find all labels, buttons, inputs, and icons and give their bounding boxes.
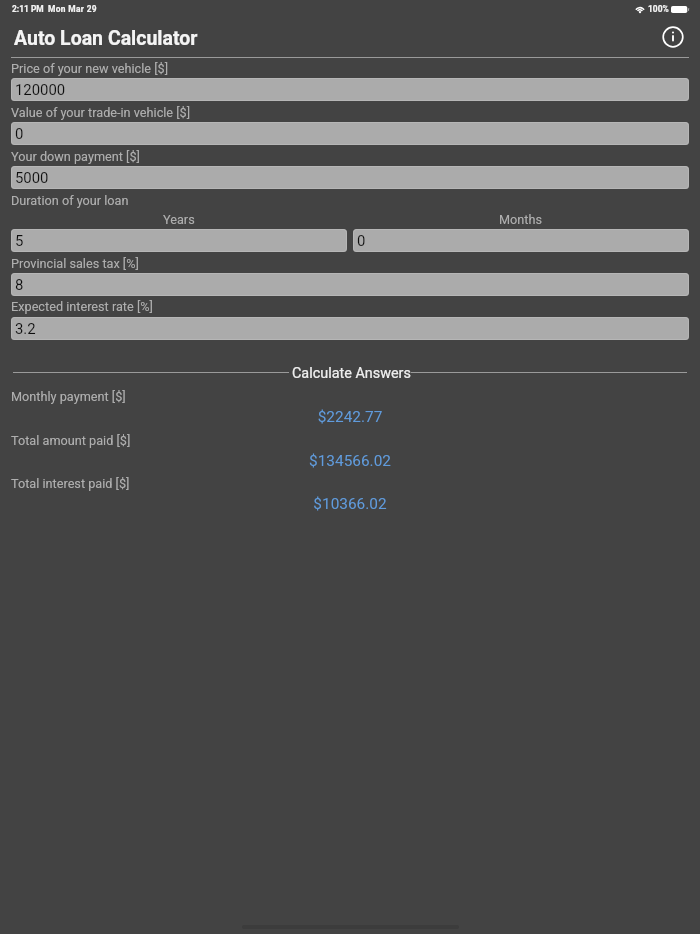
button[interactable]: 5: [11, 229, 347, 252]
button[interactable]: 120000: [11, 78, 689, 101]
staticText: 3.2: [15, 320, 36, 337]
staticText: Expected interest rate [%]: [11, 299, 153, 314]
staticText: 0: [357, 232, 366, 249]
staticText: Duration of your loan: [11, 193, 129, 208]
staticText: Monthly payment [$]: [11, 389, 126, 404]
button[interactable]: 3.2: [11, 317, 689, 340]
staticText: Calculate Answers: [292, 365, 411, 382]
staticText: Years: [163, 212, 195, 227]
staticText: Price of your new vehicle [$]: [11, 61, 169, 76]
button[interactable]: 5000: [11, 166, 689, 189]
button[interactable]: 0: [11, 122, 689, 145]
staticText: Total interest paid [$]: [11, 476, 130, 491]
staticText: 0: [15, 125, 24, 142]
button[interactable]: Calculate Answers: [13, 363, 687, 382]
button[interactable]: 8: [11, 273, 689, 296]
staticText: Auto Loan Calculator: [14, 27, 198, 50]
staticText: $2242.77: [0, 408, 700, 426]
staticText: Value of your trade-in vehicle [$]: [11, 105, 191, 120]
staticText: Months: [499, 212, 543, 227]
staticText: 5: [15, 232, 24, 249]
button[interactable]: 0: [353, 229, 689, 252]
staticText: Provincial sales tax [%]: [11, 256, 139, 271]
staticText: $134566.02: [0, 452, 700, 470]
staticText: $10366.02: [0, 495, 700, 513]
staticText: 100%: [648, 4, 669, 14]
staticText: 8: [15, 276, 24, 293]
staticText: Total amount paid [$]: [11, 433, 131, 448]
staticText: Mon Mar 29: [48, 4, 97, 14]
staticText: 2:11 PM: [12, 4, 44, 14]
staticText: 120000: [15, 81, 66, 98]
button[interactable]: Information: [658, 22, 688, 52]
staticText: Your down payment [$]: [11, 149, 140, 164]
staticText: 5000: [15, 169, 49, 186]
